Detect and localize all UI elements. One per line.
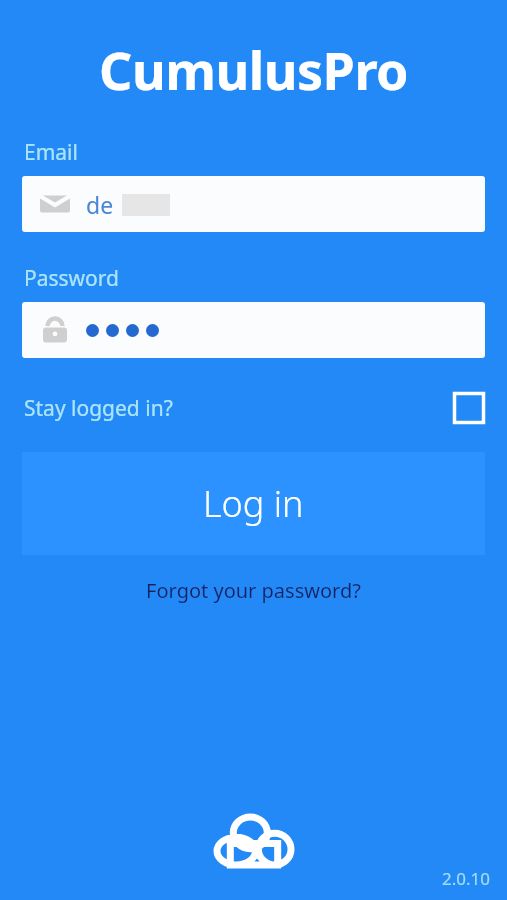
staticText: 2.0.10 (442, 867, 491, 890)
staticText: Password (24, 264, 119, 293)
button[interactable]: Stay logged in? (0, 382, 507, 434)
other: Stay logged in checkbox (453, 392, 485, 424)
button[interactable]: Log in (22, 452, 485, 555)
staticText: Stay logged in? (24, 394, 173, 423)
staticText: CumulusPro (99, 34, 409, 105)
other: Cumulus cloud logo (217, 817, 291, 865)
other: Password icon (40, 315, 70, 345)
other: Email icon (40, 189, 70, 219)
staticText: Email (24, 138, 78, 167)
button[interactable]: Email icon (22, 176, 485, 232)
staticText: Log in (203, 479, 304, 528)
button[interactable]: Forgot your password? (134, 573, 373, 608)
staticText: de (86, 189, 114, 220)
button[interactable]: Password icon (22, 302, 485, 358)
